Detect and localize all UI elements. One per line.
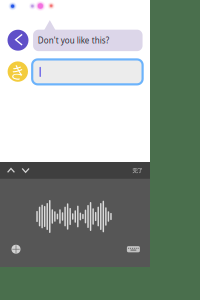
- button[interactable]: Next field: [16, 162, 35, 179]
- button[interactable]: Previous field: [1, 162, 20, 179]
- button[interactable]: Show keyboard: [124, 240, 142, 258]
- button[interactable]: Switch language: [7, 240, 25, 258]
- staticText: Don't you like this?: [38, 35, 109, 46]
- staticText: き: [10, 62, 26, 81]
- staticText: 完了: [132, 167, 142, 174]
- button[interactable]: 完了: [125, 162, 149, 179]
